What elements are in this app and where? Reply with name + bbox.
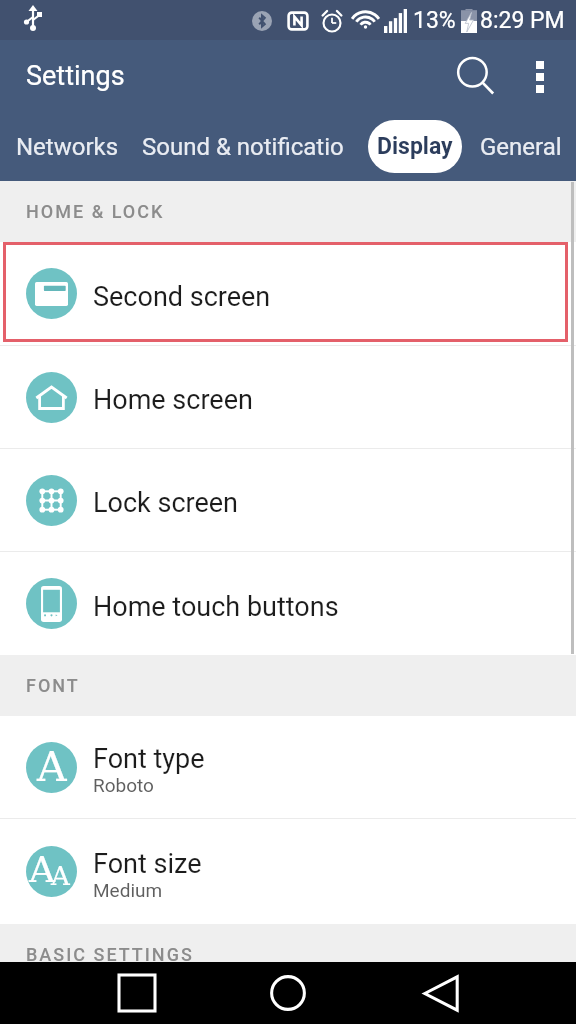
button[interactable]: Networks [0, 133, 119, 161]
staticText: HOME & LOCK [26, 201, 165, 222]
staticText: Home touch buttons [93, 591, 339, 623]
staticText: A [37, 743, 67, 791]
button[interactable]: Lock screen [0, 449, 576, 551]
staticText: A [29, 849, 55, 891]
staticText: A [51, 861, 70, 891]
staticText: Medium [93, 879, 163, 901]
button[interactable]: A [0, 819, 576, 924]
staticText: Display [377, 133, 453, 160]
staticText: BASIC SETTINGS [26, 944, 194, 962]
button[interactable]: General [480, 133, 562, 161]
button[interactable]: Back [408, 962, 474, 1024]
staticText: Home screen [93, 384, 253, 416]
staticText: Lock screen [93, 487, 238, 519]
button[interactable]: Second screen [0, 242, 576, 345]
staticText: Font type [93, 743, 205, 775]
button[interactable]: Display [368, 120, 462, 173]
staticText: Second screen [93, 281, 271, 313]
staticText: Font size [93, 848, 202, 880]
staticText: Settings [26, 60, 125, 92]
button[interactable]: Sound & notificatio [142, 133, 344, 161]
button[interactable]: Home [255, 962, 321, 1024]
button[interactable]: Home touch buttons [0, 552, 576, 655]
staticText: Roboto [93, 774, 154, 796]
button[interactable]: Home screen [0, 346, 576, 448]
staticText: 8:29 PM [480, 7, 565, 34]
staticText: FONT [26, 675, 80, 696]
staticText: 13% [413, 7, 456, 34]
button[interactable]: Search [446, 40, 506, 113]
button[interactable]: Recent apps [104, 962, 170, 1024]
button[interactable]: A [0, 716, 576, 818]
button[interactable]: More options [512, 40, 568, 113]
